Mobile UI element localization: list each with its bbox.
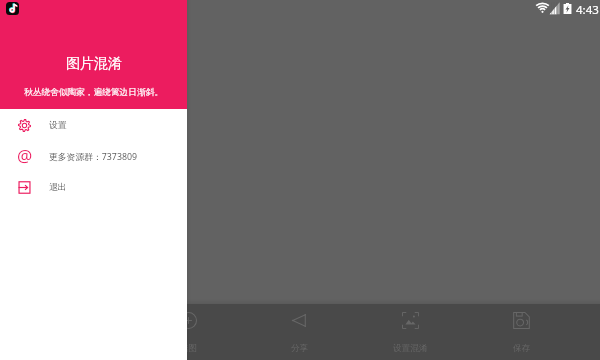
button[interactable]: 设置混淆 bbox=[355, 304, 466, 360]
button[interactable]: 选图 bbox=[133, 304, 244, 360]
staticText: 图片混淆 bbox=[66, 55, 122, 73]
staticText: 保存 bbox=[513, 343, 531, 354]
staticText: 4:43 bbox=[576, 2, 599, 18]
staticText: @ bbox=[17, 144, 33, 167]
button[interactable]: 退出 bbox=[0, 172, 187, 203]
staticText: 秋丛绕舍似陶家，遍绕篱边日渐斜。 bbox=[24, 87, 163, 98]
staticText: 设置混淆 bbox=[393, 343, 428, 354]
staticText: 退出 bbox=[49, 182, 67, 193]
staticText: 分享 bbox=[291, 343, 309, 354]
staticText: 设置 bbox=[49, 120, 67, 131]
staticText: 选图 bbox=[180, 343, 198, 354]
button[interactable]: 保存 bbox=[466, 304, 577, 360]
button[interactable]: @ bbox=[0, 141, 187, 172]
staticText: 更多资源群：7373809 bbox=[49, 151, 138, 163]
button[interactable]: 设置 bbox=[0, 110, 187, 141]
button[interactable]: App logo bbox=[6, 2, 19, 15]
